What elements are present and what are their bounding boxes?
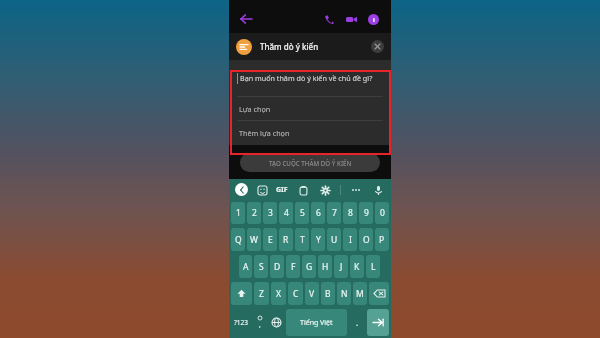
staticText: L xyxy=(371,261,376,273)
staticText: O xyxy=(363,234,370,246)
button[interactable]: Back xyxy=(236,9,256,29)
staticText: Thêm lựa chọn xyxy=(239,128,290,138)
staticText: P xyxy=(379,234,385,246)
button[interactable]: I xyxy=(343,228,357,251)
button[interactable]: H xyxy=(318,255,332,278)
button[interactable]: 4 xyxy=(279,202,293,224)
button[interactable]: X xyxy=(271,282,286,305)
button[interactable]: J xyxy=(334,255,348,278)
button[interactable]: Thêm lựa chọn xyxy=(229,121,391,145)
button[interactable]: Emoji and comma xyxy=(253,309,266,336)
staticText: K xyxy=(354,261,360,273)
button[interactable]: 2 xyxy=(247,202,261,224)
button[interactable]: Shift xyxy=(231,282,252,305)
staticText: ?123 xyxy=(234,318,248,327)
staticText: W xyxy=(250,234,258,246)
staticText: 0 xyxy=(380,207,385,219)
button[interactable]: 1 xyxy=(231,202,245,224)
button[interactable]: G xyxy=(302,255,316,278)
button[interactable]: O xyxy=(359,228,373,251)
button[interactable]: Call xyxy=(318,8,340,30)
staticText: Tiếng Việt xyxy=(300,318,333,328)
button[interactable]: M xyxy=(353,282,367,305)
staticText: C xyxy=(293,288,299,300)
button[interactable]: Change language xyxy=(268,309,284,336)
staticText: T xyxy=(300,234,305,246)
button[interactable]: Bạn muốn thăm dò ý kiến về chủ đề gì? xyxy=(229,60,391,96)
button[interactable]: More options xyxy=(349,183,363,197)
button[interactable]: 5 xyxy=(295,202,309,224)
button[interactable]: E xyxy=(263,228,277,251)
button[interactable]: Z xyxy=(254,282,269,305)
staticText: I xyxy=(349,234,352,246)
button[interactable]: Backspace xyxy=(369,282,389,305)
button[interactable]: . xyxy=(349,309,365,336)
button[interactable]: ?123 xyxy=(231,309,251,336)
button[interactable]: R xyxy=(279,228,293,251)
button[interactable]: Enter xyxy=(367,309,389,336)
staticText: R xyxy=(283,234,289,246)
button[interactable]: D xyxy=(270,255,284,278)
staticText: A xyxy=(243,261,249,273)
staticText: Lựa chọn xyxy=(239,104,271,114)
button[interactable]: V xyxy=(305,282,319,305)
button[interactable]: 0 xyxy=(375,202,389,224)
staticText: Z xyxy=(259,288,264,300)
staticText: B xyxy=(325,288,331,300)
button[interactable]: W xyxy=(247,228,261,251)
button[interactable]: Lựa chọn xyxy=(229,97,391,120)
button[interactable]: P xyxy=(375,228,389,251)
staticText: , xyxy=(259,320,261,330)
button[interactable]: TẠO CUỘC THĂM DÒ Ý KIẾN xyxy=(240,153,380,172)
button[interactable]: GIF xyxy=(276,185,288,195)
staticText: i xyxy=(373,16,375,24)
staticText: . xyxy=(356,317,359,328)
button[interactable]: C xyxy=(288,282,303,305)
button[interactable]: Y xyxy=(311,228,325,251)
staticText: Thăm dò ý kiến xyxy=(260,41,319,52)
button[interactable]: Q xyxy=(231,228,245,251)
staticText: U xyxy=(331,234,338,246)
button[interactable]: F xyxy=(286,255,300,278)
button[interactable]: 8 xyxy=(343,202,357,224)
button[interactable]: Close xyxy=(371,40,384,53)
staticText: J xyxy=(340,261,343,273)
button[interactable]: Clipboard xyxy=(296,183,310,197)
button[interactable]: 9 xyxy=(359,202,373,224)
button[interactable]: S xyxy=(254,255,268,278)
staticText: G xyxy=(306,261,313,273)
staticText: F xyxy=(291,261,296,273)
staticText: Y xyxy=(316,234,321,246)
staticText: V xyxy=(309,288,315,300)
button[interactable]: B xyxy=(321,282,335,305)
staticText: 4 xyxy=(284,207,289,219)
button[interactable]: 7 xyxy=(327,202,341,224)
button[interactable]: Tiếng Việt xyxy=(286,309,347,336)
button[interactable]: N xyxy=(337,282,351,305)
button[interactable]: Expand toolbar xyxy=(235,183,248,196)
staticText: 7 xyxy=(332,207,337,219)
button[interactable]: 6 xyxy=(311,202,325,224)
button[interactable]: L xyxy=(366,255,380,278)
staticText: D xyxy=(274,261,281,273)
button[interactable]: 3 xyxy=(263,202,277,224)
button[interactable]: Thăm dò ý kiến xyxy=(229,33,391,60)
button[interactable]: A xyxy=(239,255,252,278)
button[interactable]: Info xyxy=(362,8,384,30)
staticText: 9 xyxy=(364,207,369,219)
button[interactable]: Voice input xyxy=(371,183,385,197)
staticText: GIF xyxy=(276,185,288,195)
staticText: 2 xyxy=(252,207,257,219)
staticText: 3 xyxy=(268,207,273,219)
staticText: 5 xyxy=(300,207,305,219)
button[interactable]: Settings xyxy=(318,183,332,197)
staticText: Q xyxy=(235,234,242,246)
button[interactable]: T xyxy=(295,228,309,251)
button[interactable]: Stickers xyxy=(255,183,269,197)
staticText: TẠO CUỘC THĂM DÒ Ý KIẾN xyxy=(269,159,352,167)
button[interactable]: U xyxy=(327,228,341,251)
staticText: 1 xyxy=(236,207,241,219)
button[interactable]: Video call xyxy=(340,8,362,30)
staticText: N xyxy=(341,288,348,300)
button[interactable]: K xyxy=(350,255,364,278)
